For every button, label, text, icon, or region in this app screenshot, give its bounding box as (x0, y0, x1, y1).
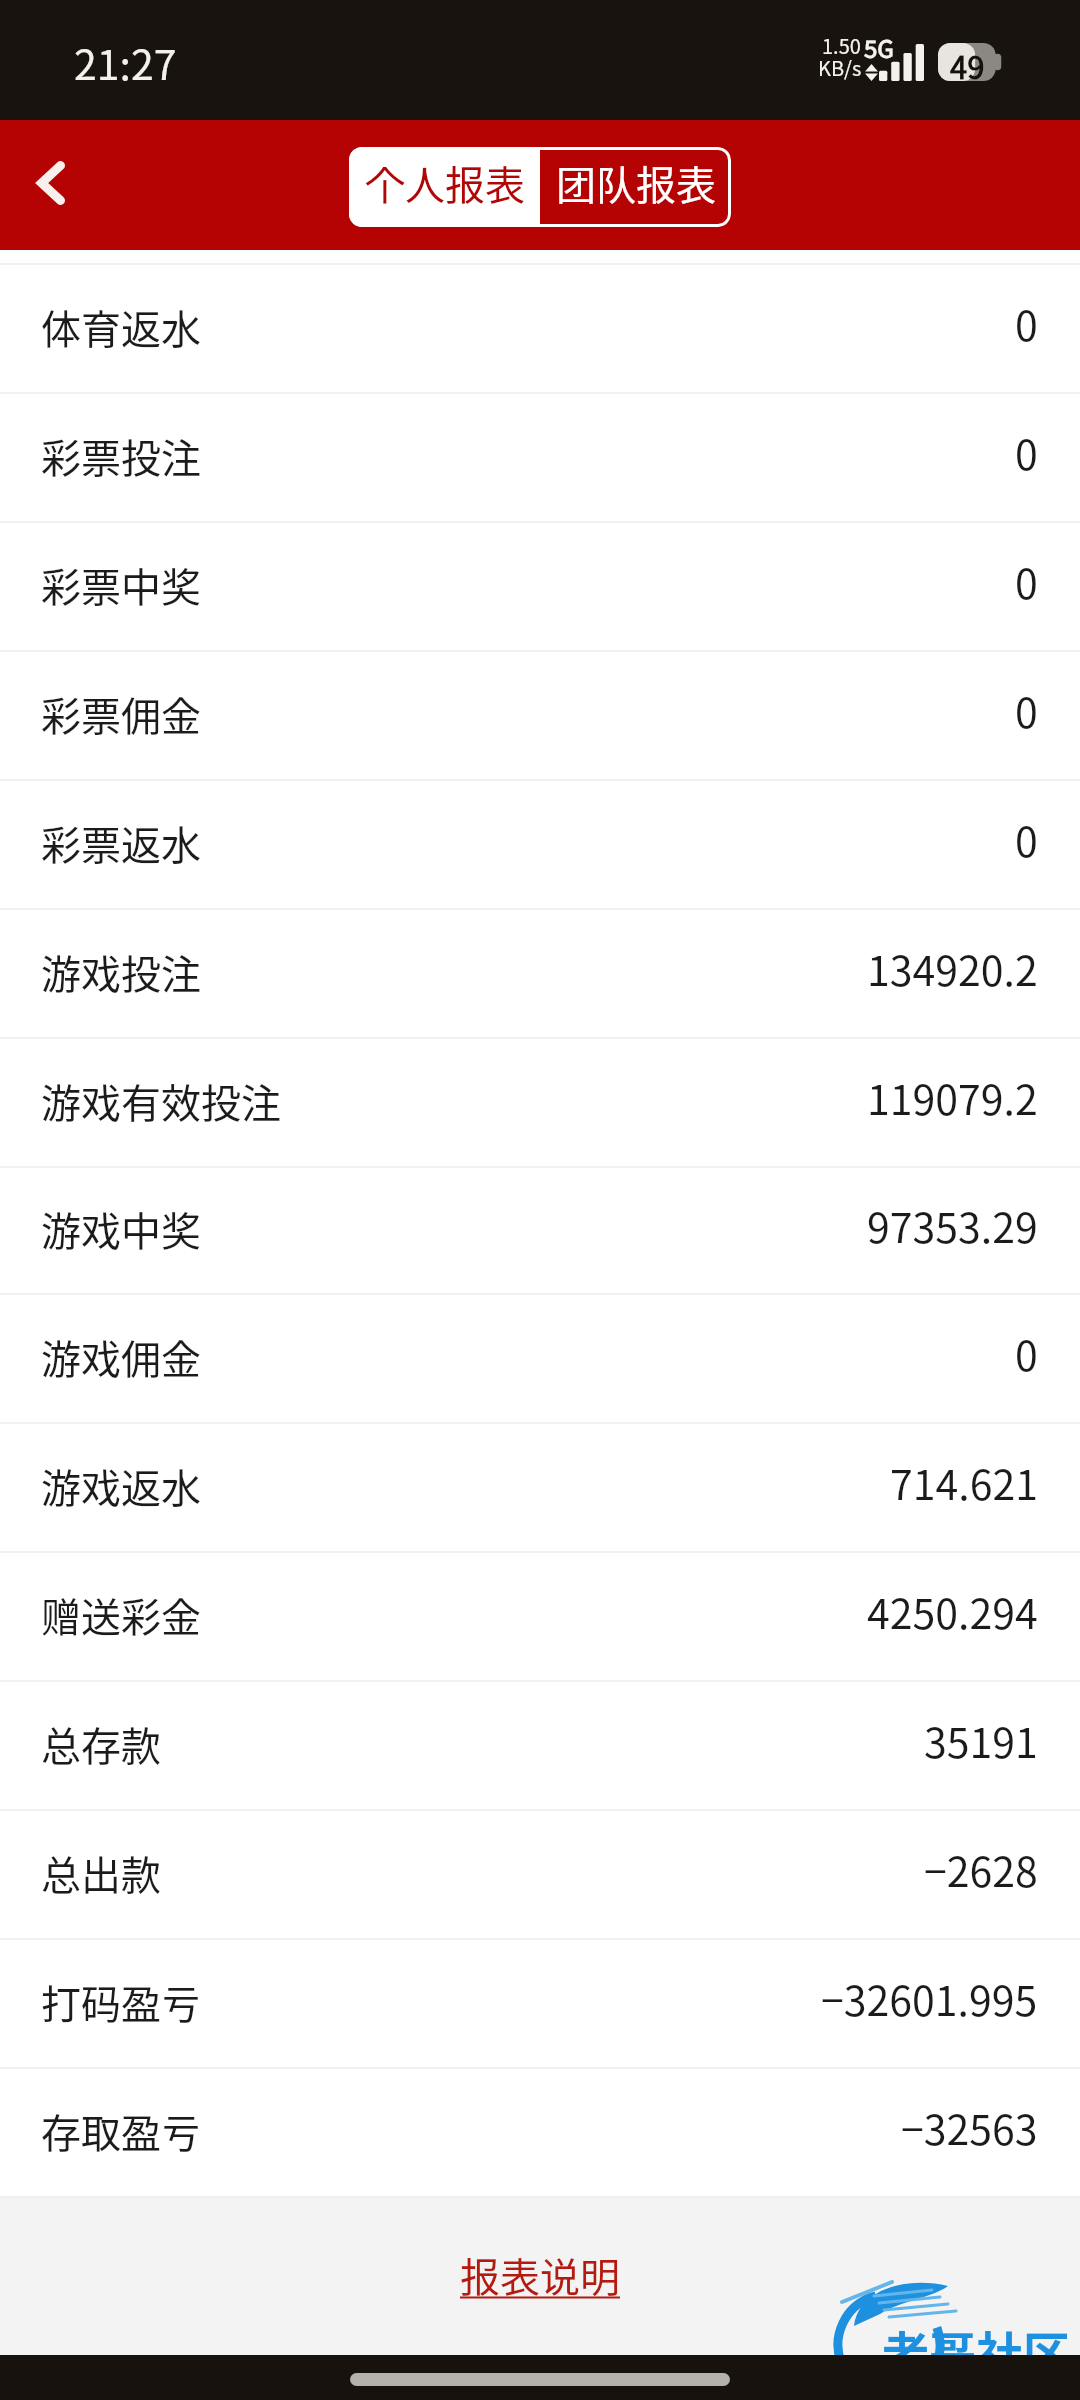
button[interactable]: 总存款 (0, 1682, 1080, 1809)
staticText: 714.621 (890, 1452, 1038, 1511)
button[interactable]: 彩票中奖 (0, 523, 1080, 650)
button[interactable]: Back (13, 141, 97, 225)
button[interactable]: 游戏中奖 (0, 1168, 1080, 1293)
staticText: 49 (950, 43, 985, 81)
staticText: 彩票投注 (41, 427, 201, 485)
staticText: 0 (1015, 293, 1038, 352)
staticText: 35191 (924, 1710, 1038, 1769)
staticText: 游戏中奖 (41, 1200, 201, 1258)
staticText: KB/s (818, 53, 862, 82)
staticText: 彩票佣金 (41, 685, 201, 743)
button[interactable]: 体育返水 (0, 265, 1080, 392)
staticText: 总存款 (41, 1715, 161, 1773)
staticText: −32601.995 (821, 1968, 1038, 2027)
staticText: 彩票中奖 (41, 556, 201, 614)
button[interactable]: 团队报表 (540, 147, 731, 227)
staticText: 团队报表 (556, 154, 716, 212)
staticText: 游戏返水 (41, 1457, 201, 1515)
button[interactable]: 彩票投注 (0, 394, 1080, 521)
staticText: 游戏有效投注 (41, 1072, 281, 1130)
staticText: 打码盈亏 (41, 1973, 201, 2031)
staticText: 21:27 (74, 32, 177, 91)
staticText: 体育返水 (41, 298, 201, 356)
staticText: −32563 (901, 2097, 1038, 2156)
staticText: 5G (864, 30, 894, 65)
staticText: 游戏投注 (41, 943, 201, 1001)
button[interactable]: 游戏返水 (0, 1424, 1080, 1551)
staticText: 0 (1015, 809, 1038, 868)
button[interactable]: 总出款 (0, 1811, 1080, 1938)
button[interactable]: 报表说明 (460, 2246, 620, 2304)
staticText: 彩票返水 (41, 814, 201, 872)
staticText: 4250.294 (867, 1581, 1038, 1640)
staticText: 0 (1015, 680, 1038, 739)
button[interactable]: 打码盈亏 (0, 1940, 1080, 2067)
staticText: 总出款 (41, 1844, 161, 1902)
button[interactable]: 游戏有效投注 (0, 1039, 1080, 1166)
staticText: −2628 (924, 1839, 1038, 1898)
button[interactable]: 游戏佣金 (0, 1295, 1080, 1422)
staticText: 97353.29 (867, 1195, 1038, 1254)
button[interactable]: 彩票佣金 (0, 652, 1080, 779)
button[interactable]: 彩票返水 (0, 781, 1080, 908)
staticText: 0 (1015, 1323, 1038, 1382)
staticText: 存取盈亏 (41, 2102, 201, 2160)
staticText: 赠送彩金 (41, 1586, 201, 1644)
staticText: 0 (1015, 551, 1038, 610)
button[interactable]: 游戏投注 (0, 910, 1080, 1037)
staticText: 游戏佣金 (41, 1328, 201, 1386)
button[interactable]: 个人报表 (349, 147, 540, 227)
staticText: 134920.2 (867, 938, 1038, 997)
staticText: 1.50 (822, 31, 861, 60)
button[interactable]: 赠送彩金 (0, 1553, 1080, 1680)
staticText: 119079.2 (867, 1067, 1038, 1126)
staticText: 个人报表 (365, 154, 525, 212)
staticText: 报表说明 (460, 2246, 620, 2304)
staticText: 0 (1015, 422, 1038, 481)
staticText: 老哥社区 (882, 2316, 1070, 2384)
button[interactable]: 存取盈亏 (0, 2069, 1080, 2196)
